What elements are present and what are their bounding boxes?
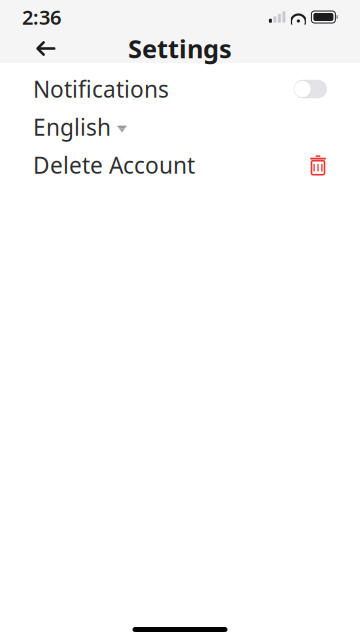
- button[interactable]: English: [11, 110, 349, 144]
- button[interactable]: Back: [28, 30, 64, 66]
- staticText: Notifications: [33, 74, 169, 104]
- button[interactable]: Notifications: [11, 72, 349, 106]
- staticText: English: [33, 112, 111, 142]
- button[interactable]: Delete Account: [11, 148, 349, 182]
- staticText: Delete Account: [33, 150, 195, 180]
- staticText: Settings: [128, 32, 232, 65]
- staticText: 2:36: [22, 4, 61, 30]
